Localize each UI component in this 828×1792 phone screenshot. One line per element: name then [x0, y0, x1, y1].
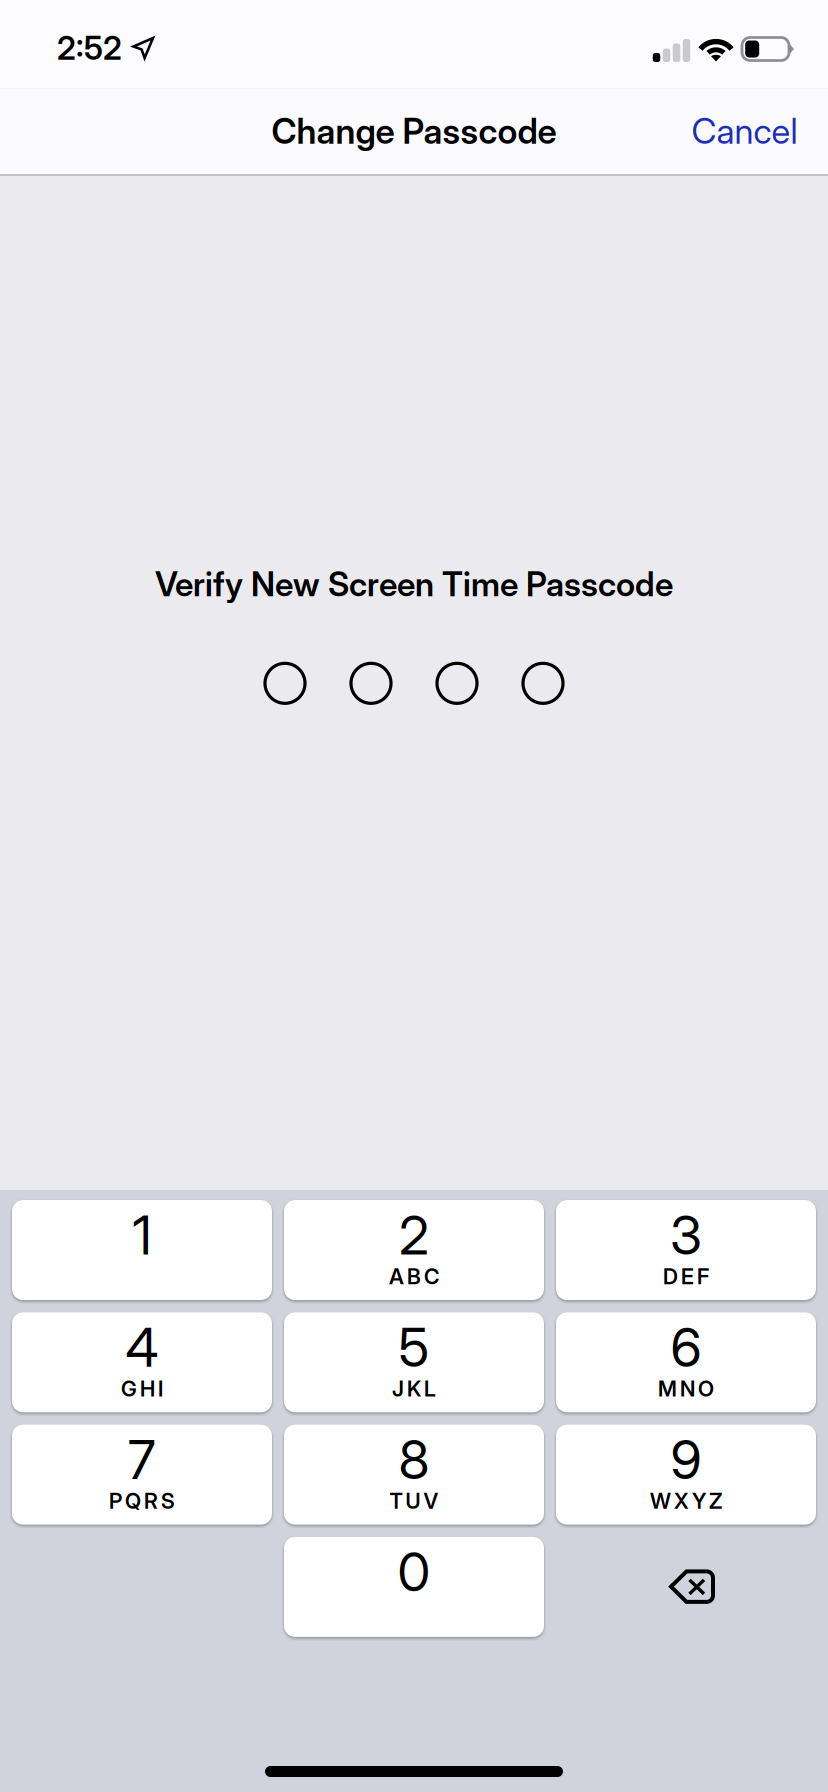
staticText: 6: [670, 1315, 701, 1379]
button[interactable]: 9: [556, 1425, 816, 1525]
staticText: W X Y Z: [650, 1488, 722, 1514]
button[interactable]: 3: [556, 1200, 816, 1300]
staticText: D E F: [663, 1264, 709, 1289]
staticText: 3: [670, 1203, 702, 1267]
button[interactable]: 7: [12, 1425, 272, 1525]
staticText: 9: [670, 1427, 701, 1492]
staticText: 1: [132, 1203, 151, 1267]
staticText: T U V: [389, 1488, 438, 1514]
staticText: M N O: [658, 1376, 714, 1402]
staticText: 2: [399, 1203, 429, 1267]
button[interactable]: Delete: [556, 1537, 816, 1637]
staticText: 0: [397, 1540, 430, 1604]
staticText: P Q R S: [109, 1488, 175, 1514]
button[interactable]: 0: [284, 1537, 544, 1637]
button[interactable]: 2: [284, 1200, 544, 1300]
button[interactable]: 4: [12, 1312, 272, 1412]
button[interactable]: 5: [284, 1312, 544, 1412]
button[interactable]: 6: [556, 1312, 816, 1412]
staticText: 8: [398, 1427, 429, 1492]
staticText: G H I: [121, 1376, 163, 1402]
staticText: 5: [398, 1315, 429, 1379]
button[interactable]: Cancel: [671, 88, 817, 174]
button[interactable]: 8: [284, 1425, 544, 1525]
staticText: 2:52: [57, 29, 122, 67]
staticText: Verify New Screen Time Passcode: [155, 564, 673, 604]
staticText: 4: [125, 1315, 158, 1379]
button[interactable]: 1: [12, 1200, 272, 1300]
staticText: Cancel: [691, 110, 797, 152]
staticText: Change Passcode: [271, 110, 556, 152]
staticText: A B C: [389, 1264, 439, 1289]
staticText: 7: [128, 1427, 156, 1492]
staticText: J K L: [392, 1376, 436, 1402]
